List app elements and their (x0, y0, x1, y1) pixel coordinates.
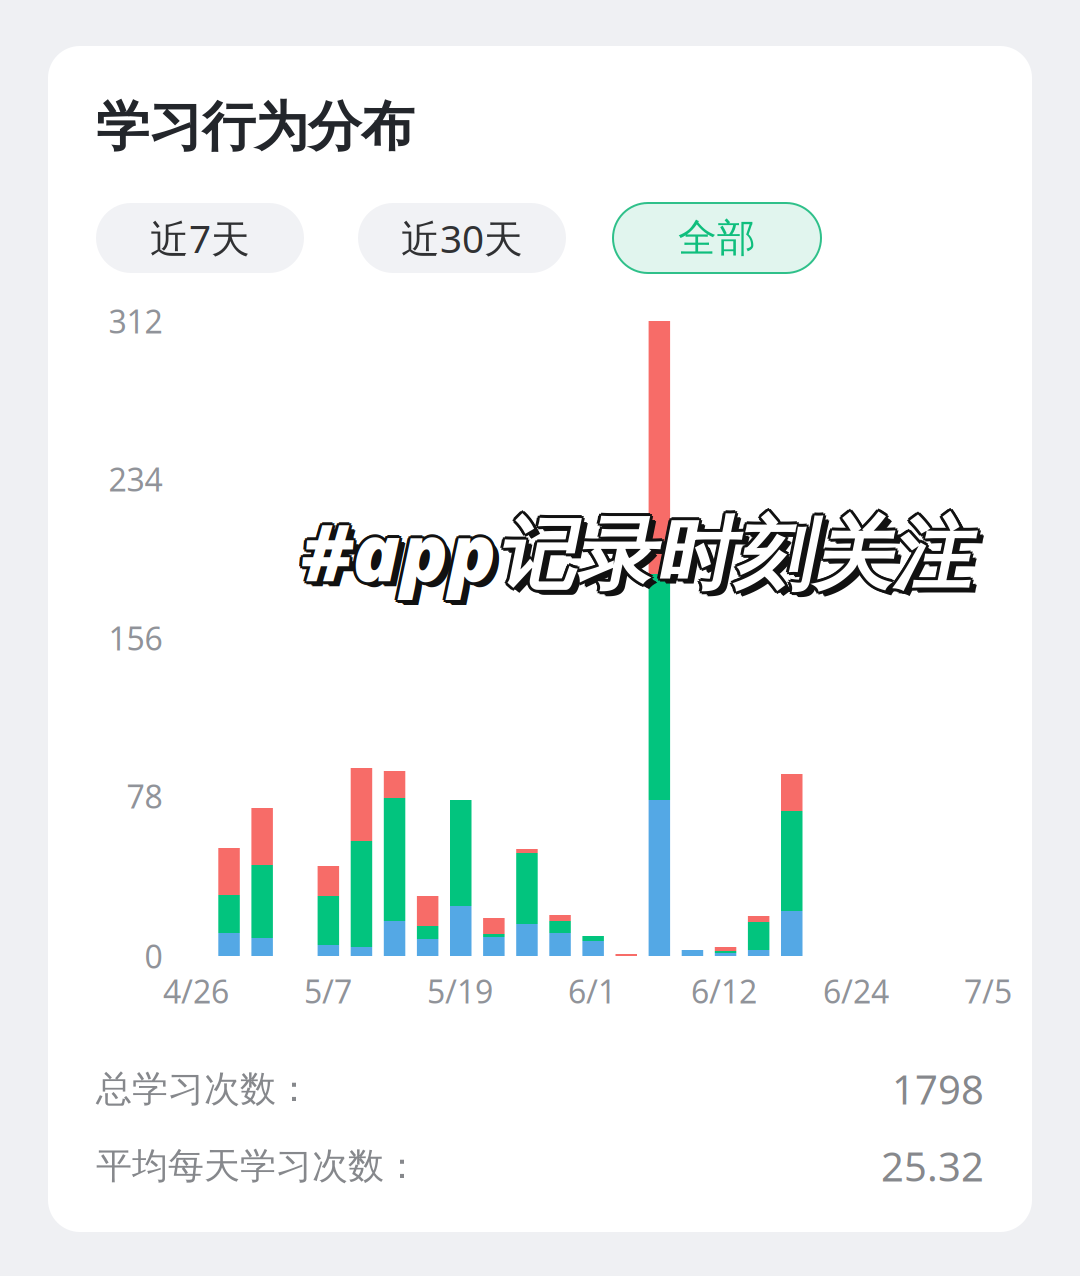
staticText: 6/12 (691, 970, 757, 1012)
staticText: 312 (108, 300, 162, 342)
button[interactable]: 全部 (613, 203, 821, 273)
staticText: 7/5 (964, 970, 1012, 1012)
staticText: #app记录时刻关注 (301, 502, 970, 606)
staticText: 234 (108, 458, 162, 500)
staticText: 0 (144, 935, 162, 977)
button[interactable]: 近7天 (96, 203, 304, 273)
staticText: #app记录时刻关注 (307, 504, 976, 608)
staticText: 近30天 (401, 212, 523, 264)
staticText: 近7天 (150, 212, 250, 264)
staticText: 25.32 (881, 1139, 984, 1192)
staticText: 6/1 (568, 970, 616, 1012)
staticText: #app记录时刻关注 (299, 501, 968, 605)
staticText: 总学习次数： (96, 1067, 312, 1111)
staticText: #app记录时刻关注 (301, 496, 970, 600)
staticText: 学习行为分布 (96, 94, 414, 160)
staticText: #app记录时刻关注 (299, 497, 968, 601)
staticText: #app记录时刻关注 (298, 499, 967, 603)
staticText: 5/7 (304, 970, 352, 1012)
staticText: #app记录时刻关注 (304, 499, 973, 603)
staticText: #app记录时刻关注 (306, 503, 975, 607)
staticText: 156 (108, 617, 162, 659)
staticText: 全部 (678, 214, 756, 262)
staticText: #app记录时刻关注 (303, 501, 972, 605)
staticText: 平均每天学习次数： (96, 1144, 420, 1188)
staticText: 1798 (892, 1062, 984, 1115)
staticText: #app记录时刻关注 (303, 497, 972, 601)
staticText: 78 (126, 775, 162, 817)
staticText: 6/24 (823, 970, 889, 1012)
staticText: 5/19 (427, 970, 493, 1012)
button[interactable]: 近30天 (358, 203, 566, 273)
staticText: 4/26 (163, 970, 229, 1012)
staticText: #app记录时刻关注 (301, 499, 970, 603)
